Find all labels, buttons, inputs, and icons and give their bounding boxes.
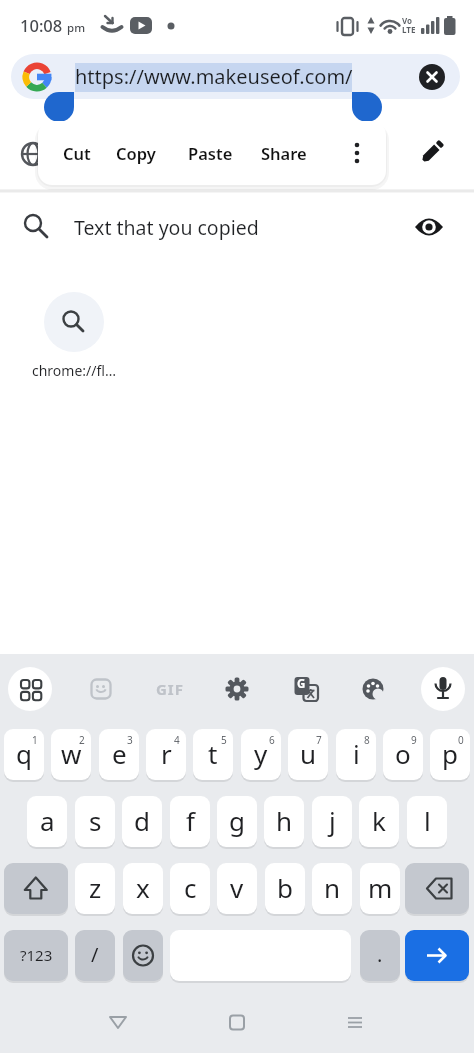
button[interactable] — [217, 863, 257, 914]
staticText: G — [297, 676, 306, 692]
button[interactable] — [123, 930, 163, 981]
staticText: https://www.makeuseof.com/ — [75, 63, 353, 90]
button[interactable] — [51, 729, 91, 780]
staticText: l — [424, 803, 431, 838]
button[interactable] — [75, 930, 115, 981]
staticText: 8 — [364, 733, 370, 746]
button[interactable] — [359, 796, 399, 847]
button[interactable] — [430, 729, 470, 780]
button[interactable] — [360, 930, 400, 981]
staticText: t — [208, 736, 218, 771]
staticText: i — [353, 736, 360, 771]
button[interactable] — [170, 796, 210, 847]
button[interactable] — [407, 796, 447, 847]
staticText: 10:08 — [20, 14, 63, 36]
staticText: Vo — [402, 15, 413, 26]
staticText: j — [329, 803, 336, 838]
staticText: w — [61, 736, 82, 771]
button[interactable] — [223, 1008, 251, 1036]
button[interactable] — [259, 121, 309, 185]
button[interactable] — [405, 930, 469, 981]
staticText: Cut — [63, 142, 91, 164]
staticText: c — [184, 870, 197, 905]
button[interactable] — [293, 676, 319, 702]
staticText: 4 — [174, 733, 180, 746]
button[interactable] — [52, 121, 102, 185]
staticText: n — [324, 870, 341, 905]
staticText: o — [395, 736, 411, 771]
staticText: u — [300, 736, 317, 771]
button[interactable] — [8, 667, 52, 711]
staticText: b — [277, 870, 293, 905]
staticText: chrome://fl… — [32, 361, 116, 380]
button[interactable] — [241, 729, 281, 780]
button[interactable] — [361, 677, 385, 701]
staticText: pm — [67, 20, 86, 36]
button[interactable] — [336, 729, 376, 780]
button[interactable] — [312, 863, 352, 914]
staticText: 9 — [411, 733, 417, 746]
button[interactable] — [193, 729, 233, 780]
button[interactable] — [265, 863, 305, 914]
button[interactable] — [75, 796, 115, 847]
button[interactable] — [360, 863, 400, 914]
staticText: s — [89, 803, 102, 838]
button[interactable] — [405, 863, 469, 914]
staticText: r — [161, 736, 172, 771]
staticText: . — [377, 941, 383, 968]
staticText: y — [254, 736, 268, 771]
staticText: v — [230, 870, 244, 905]
button[interactable] — [99, 729, 139, 780]
staticText: m — [368, 870, 393, 905]
button[interactable] — [417, 137, 447, 167]
button[interactable] — [217, 796, 257, 847]
staticText: / — [91, 941, 99, 968]
button[interactable] — [185, 121, 235, 185]
button[interactable] — [44, 292, 104, 352]
staticText: f — [186, 803, 195, 838]
staticText: 3 — [127, 733, 133, 746]
button[interactable] — [4, 729, 44, 780]
button[interactable] — [75, 863, 115, 914]
button[interactable] — [123, 863, 163, 914]
staticText: Copy — [116, 142, 156, 164]
button[interactable] — [11, 54, 460, 99]
button[interactable] — [288, 729, 328, 780]
button[interactable] — [90, 678, 112, 700]
button[interactable] — [0, 196, 474, 258]
button[interactable] — [170, 863, 210, 914]
button[interactable] — [383, 729, 423, 780]
staticText: d — [134, 803, 150, 838]
staticText: e — [112, 736, 127, 771]
button[interactable] — [225, 677, 249, 701]
button[interactable] — [111, 121, 161, 185]
staticText: k — [372, 803, 386, 838]
button[interactable] — [27, 796, 67, 847]
staticText: Share — [261, 142, 307, 164]
button[interactable] — [419, 64, 445, 90]
button[interactable] — [4, 930, 68, 981]
button[interactable] — [104, 1008, 132, 1036]
button[interactable] — [150, 672, 190, 706]
staticText: a — [40, 803, 55, 838]
button[interactable] — [421, 667, 465, 711]
button[interactable] — [341, 1008, 369, 1036]
staticText: z — [89, 870, 102, 905]
button[interactable] — [146, 729, 186, 780]
button[interactable] — [122, 796, 162, 847]
staticText: 6 — [269, 733, 275, 746]
staticText: GIF — [156, 679, 184, 699]
staticText: g — [229, 803, 245, 838]
staticText: 0 — [458, 733, 464, 746]
button[interactable] — [264, 796, 304, 847]
staticText: Paste — [188, 142, 233, 164]
button[interactable] — [4, 863, 68, 914]
button[interactable] — [414, 212, 444, 242]
staticText: 1 — [32, 733, 38, 746]
button[interactable] — [312, 796, 352, 847]
staticText: 7 — [316, 733, 322, 746]
staticText: Text that you copied — [74, 214, 259, 241]
staticText: p — [442, 736, 458, 771]
button[interactable] — [343, 125, 371, 181]
